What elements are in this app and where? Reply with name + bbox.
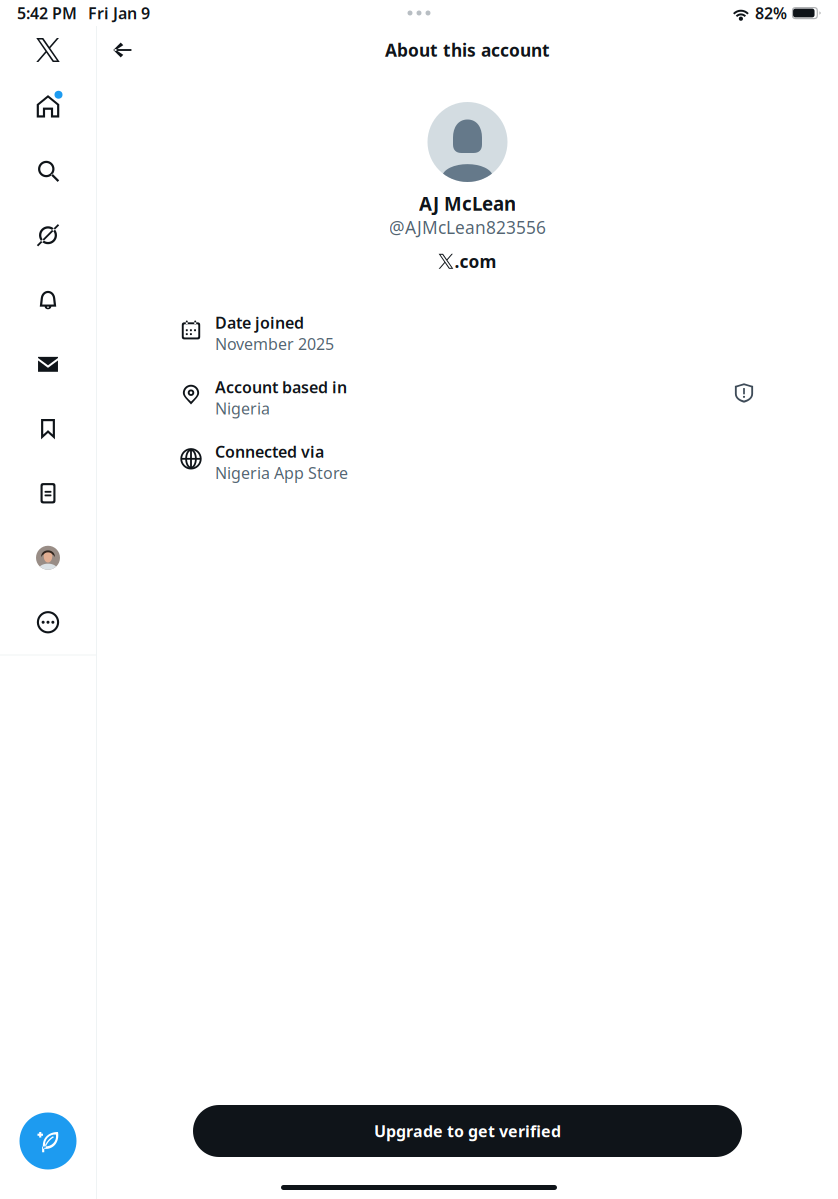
button[interactable]: Back <box>101 28 145 72</box>
button[interactable]: Profile <box>0 525 96 590</box>
staticText: 82% <box>755 2 787 24</box>
button[interactable]: More <box>0 590 96 654</box>
staticText: November 2025 <box>215 333 334 354</box>
staticText: Upgrade to get verified <box>374 1120 561 1142</box>
button[interactable]: Compose <box>0 1103 96 1179</box>
button[interactable]: Messages <box>0 332 96 396</box>
staticText: @AJMcLean823556 <box>389 216 546 239</box>
staticText: Nigeria App Store <box>215 462 348 483</box>
button[interactable]: X <box>0 26 96 74</box>
staticText: Date joined <box>215 312 304 333</box>
staticText: .com <box>454 250 496 273</box>
staticText: AJ McLean <box>419 191 516 216</box>
staticText: Nigeria <box>215 398 270 419</box>
staticText: Connected via <box>215 441 324 462</box>
button[interactable]: Search <box>0 138 96 203</box>
staticText: Fri Jan 9 <box>88 2 150 24</box>
button[interactable]: Home <box>0 74 96 138</box>
staticText: 5:42 PM <box>17 2 77 24</box>
button[interactable]: Lists <box>0 461 96 525</box>
button[interactable]: Grok <box>0 203 96 267</box>
button[interactable]: Notifications <box>0 267 96 332</box>
staticText: About this account <box>385 38 550 61</box>
button[interactable]: Account information <box>722 371 766 415</box>
button[interactable]: Upgrade to get verified <box>193 1105 742 1157</box>
button[interactable]: Bookmarks <box>0 396 96 461</box>
staticText: Account based in <box>215 376 347 397</box>
